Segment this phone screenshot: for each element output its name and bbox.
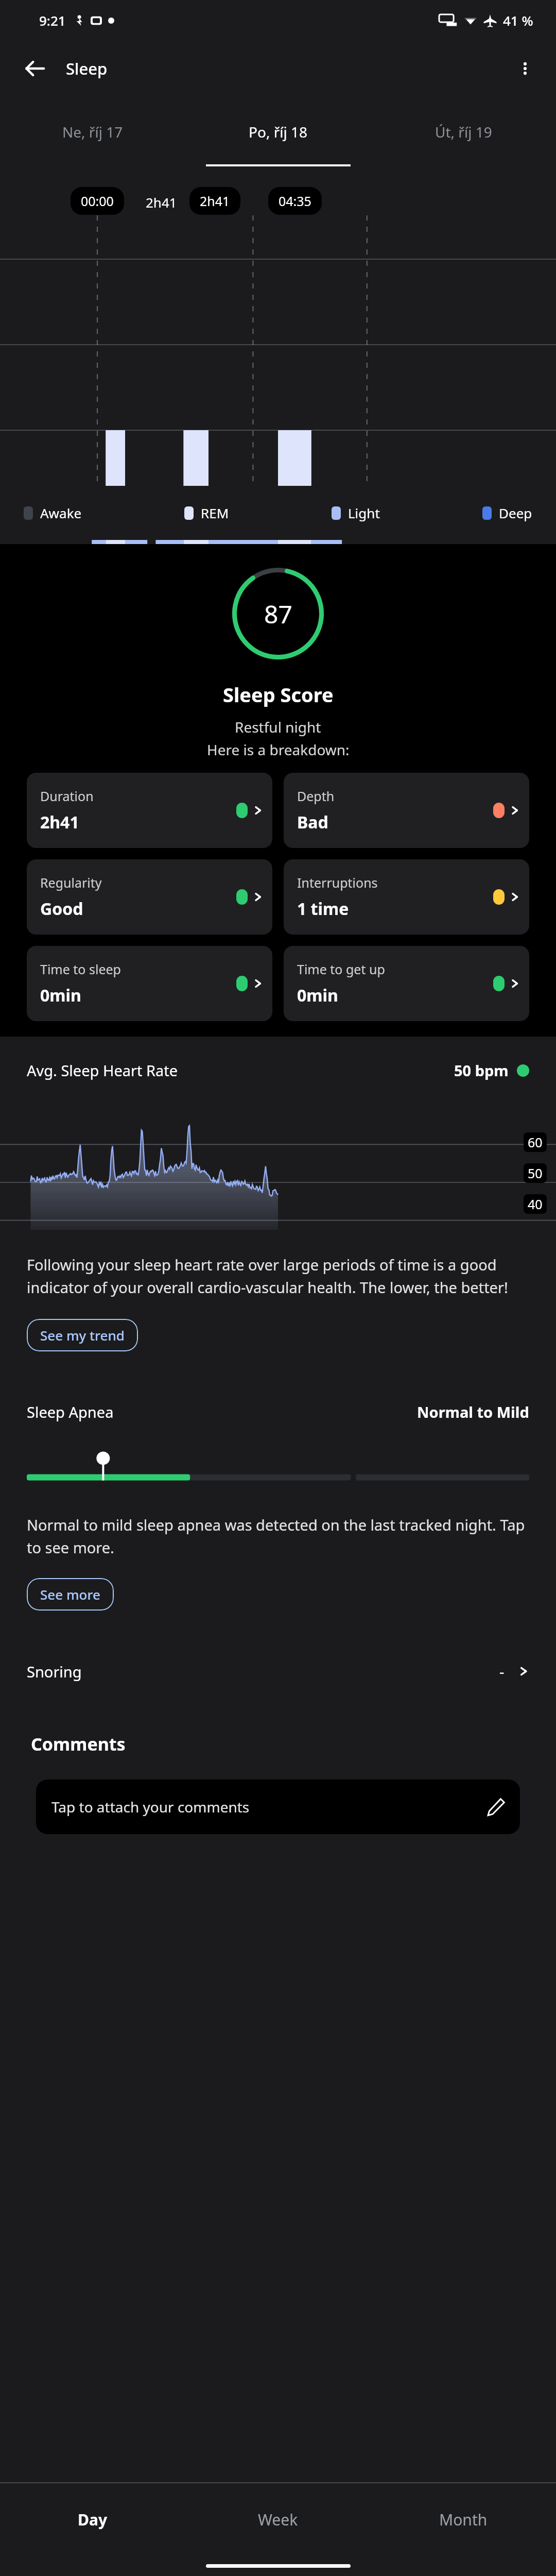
- staticText: Sleep Apnea: [27, 1402, 114, 1422]
- staticText: 1 time: [297, 897, 349, 920]
- staticText: 9:21: [39, 11, 66, 29]
- button[interactable]: More options: [507, 50, 544, 87]
- staticText: -: [499, 1662, 505, 1682]
- button[interactable]: Day: [0, 2483, 185, 2555]
- staticText: Normal to mild sleep apnea was detected …: [27, 1515, 529, 1557]
- staticText: Út, říj 19: [435, 122, 492, 142]
- staticText: 04:35: [279, 192, 311, 210]
- staticText: 50 bpm: [454, 1060, 509, 1080]
- staticText: 41 %: [503, 11, 533, 29]
- staticText: 2h41: [146, 193, 177, 211]
- staticText: 60: [528, 1133, 543, 1151]
- button[interactable]: See my trend: [27, 1319, 138, 1351]
- staticText: Here is a breakdown:: [207, 740, 350, 759]
- button[interactable]: Duration: [27, 773, 272, 848]
- staticText: Good: [40, 897, 83, 920]
- staticText: 00:00: [81, 192, 114, 210]
- staticText: Day: [78, 2509, 108, 2530]
- staticText: See my trend: [40, 1326, 125, 1344]
- staticText: 0min: [297, 984, 338, 1007]
- button[interactable]: Snoring: [0, 1637, 556, 1705]
- other: Edit comment: [487, 1798, 505, 1816]
- staticText: Time to get up: [297, 960, 385, 978]
- staticText: Duration: [40, 787, 94, 805]
- staticText: Awake: [40, 504, 82, 522]
- staticText: REM: [201, 504, 229, 522]
- staticText: 40: [528, 1195, 543, 1213]
- staticText: Ne, říj 17: [62, 122, 123, 142]
- staticText: Bad: [297, 811, 328, 834]
- button[interactable]: Depth: [284, 773, 529, 848]
- staticText: Regularity: [40, 874, 102, 891]
- staticText: Week: [258, 2509, 298, 2530]
- staticText: 2h41: [200, 192, 230, 210]
- staticText: Light: [348, 504, 380, 522]
- button[interactable]: Ne, říj 17: [0, 97, 185, 166]
- staticText: Normal to Mild: [417, 1402, 529, 1422]
- button[interactable]: See more: [27, 1578, 114, 1611]
- staticText: Avg. Sleep Heart Rate: [27, 1060, 178, 1080]
- staticText: Month: [439, 2509, 488, 2530]
- staticText: Interruptions: [297, 874, 378, 891]
- button[interactable]: Time to get up: [284, 946, 529, 1021]
- button[interactable]: Sleep Apnea: [0, 1378, 556, 1633]
- staticText: Deep: [499, 504, 532, 522]
- button[interactable]: Time to sleep: [27, 946, 272, 1021]
- button[interactable]: Back: [16, 50, 54, 87]
- button[interactable]: Week: [185, 2483, 371, 2555]
- button[interactable]: Interruptions: [284, 859, 529, 935]
- staticText: 87: [264, 597, 292, 631]
- button[interactable]: Month: [371, 2483, 556, 2555]
- staticText: 0min: [40, 984, 81, 1007]
- staticText: Comments: [31, 1732, 126, 1756]
- staticText: Restful night: [235, 717, 321, 737]
- staticText: Depth: [297, 787, 335, 805]
- staticText: Tap to attach your comments: [51, 1797, 250, 1817]
- staticText: 2h41: [40, 811, 79, 834]
- button[interactable]: Tap to attach your comments: [36, 1780, 520, 1834]
- button[interactable]: Regularity: [27, 859, 272, 935]
- staticText: Time to sleep: [40, 960, 121, 978]
- staticText: Sleep: [66, 58, 108, 79]
- staticText: 50: [528, 1164, 543, 1182]
- button[interactable]: Út, říj 19: [371, 97, 556, 166]
- staticText: See more: [40, 1585, 100, 1603]
- staticText: Snoring: [27, 1662, 82, 1682]
- staticText: Following your sleep heart rate over lar…: [27, 1255, 529, 1297]
- staticText: Po, říj 18: [249, 122, 307, 142]
- staticText: Sleep Score: [223, 681, 334, 708]
- button[interactable]: Po, říj 18: [185, 97, 371, 166]
